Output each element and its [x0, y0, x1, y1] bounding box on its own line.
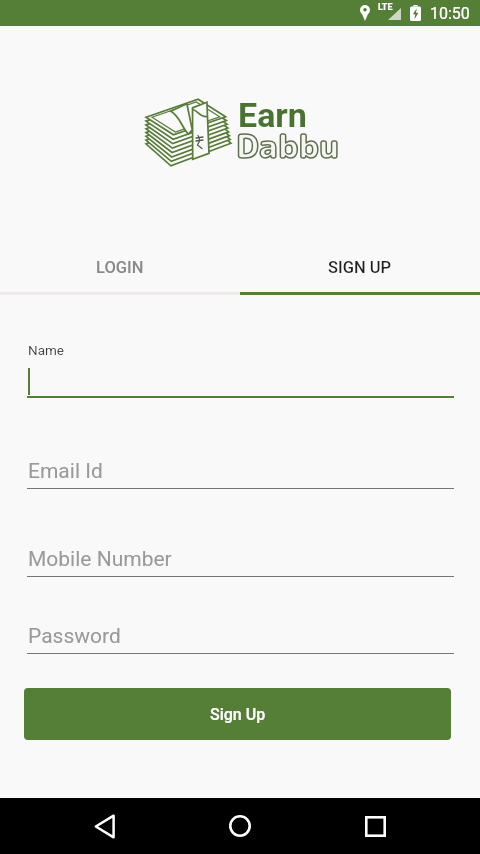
staticText: Mobile Number — [28, 547, 172, 572]
staticText: Email Id — [28, 459, 103, 484]
button[interactable]: Password — [27, 624, 454, 654]
button[interactable]: Back — [81, 802, 129, 850]
button[interactable]: Home — [216, 802, 264, 850]
staticText: Dabbu — [236, 123, 340, 169]
button[interactable]: Sign Up — [24, 688, 451, 740]
staticText: LTE — [378, 2, 393, 13]
button[interactable]: Email Id — [27, 459, 454, 489]
button[interactable]: Recent apps — [351, 802, 399, 850]
staticText: Dabbu — [236, 123, 340, 169]
button[interactable]: SIGN UP — [240, 243, 480, 292]
staticText: LOGIN — [96, 258, 144, 277]
staticText: SIGN UP — [328, 258, 392, 277]
button[interactable]: Mobile Number — [27, 547, 454, 577]
staticText: Password — [28, 624, 121, 649]
button[interactable] — [27, 367, 454, 396]
staticText: Name — [28, 342, 64, 358]
staticText: Sign Up — [210, 705, 266, 724]
staticText: 10:50 — [430, 4, 470, 23]
staticText: Earn — [238, 95, 307, 135]
button[interactable]: LOGIN — [0, 243, 240, 292]
